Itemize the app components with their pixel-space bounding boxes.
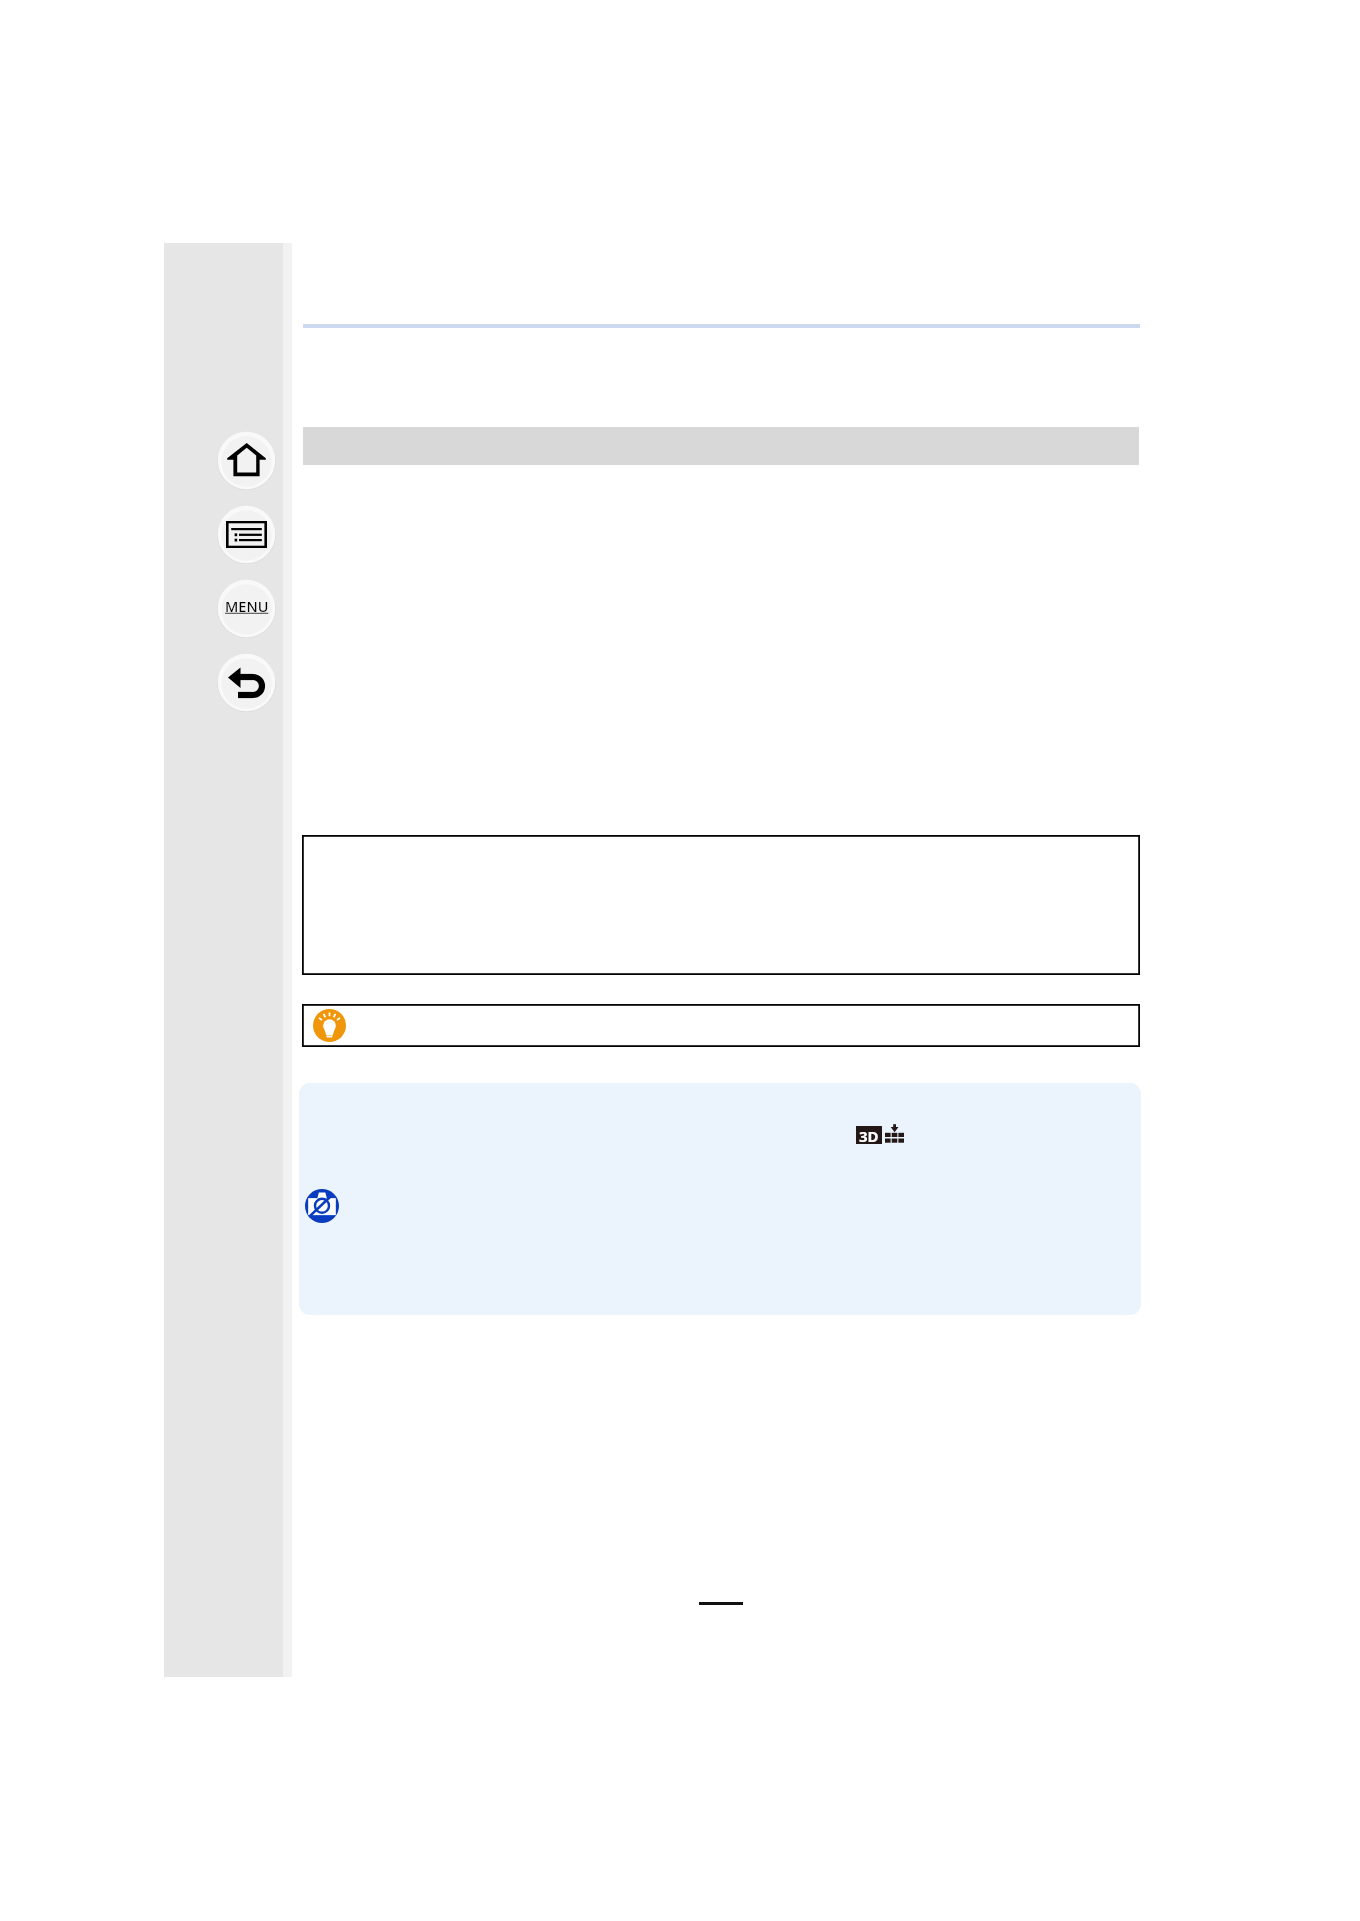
staticText: 3D bbox=[859, 1126, 879, 1144]
button[interactable]: Menu bbox=[217, 579, 276, 638]
button[interactable]: Home bbox=[217, 431, 276, 490]
staticText: MENU bbox=[225, 596, 269, 616]
button[interactable]: Contents bbox=[217, 505, 276, 564]
button[interactable]: Back bbox=[217, 653, 276, 712]
